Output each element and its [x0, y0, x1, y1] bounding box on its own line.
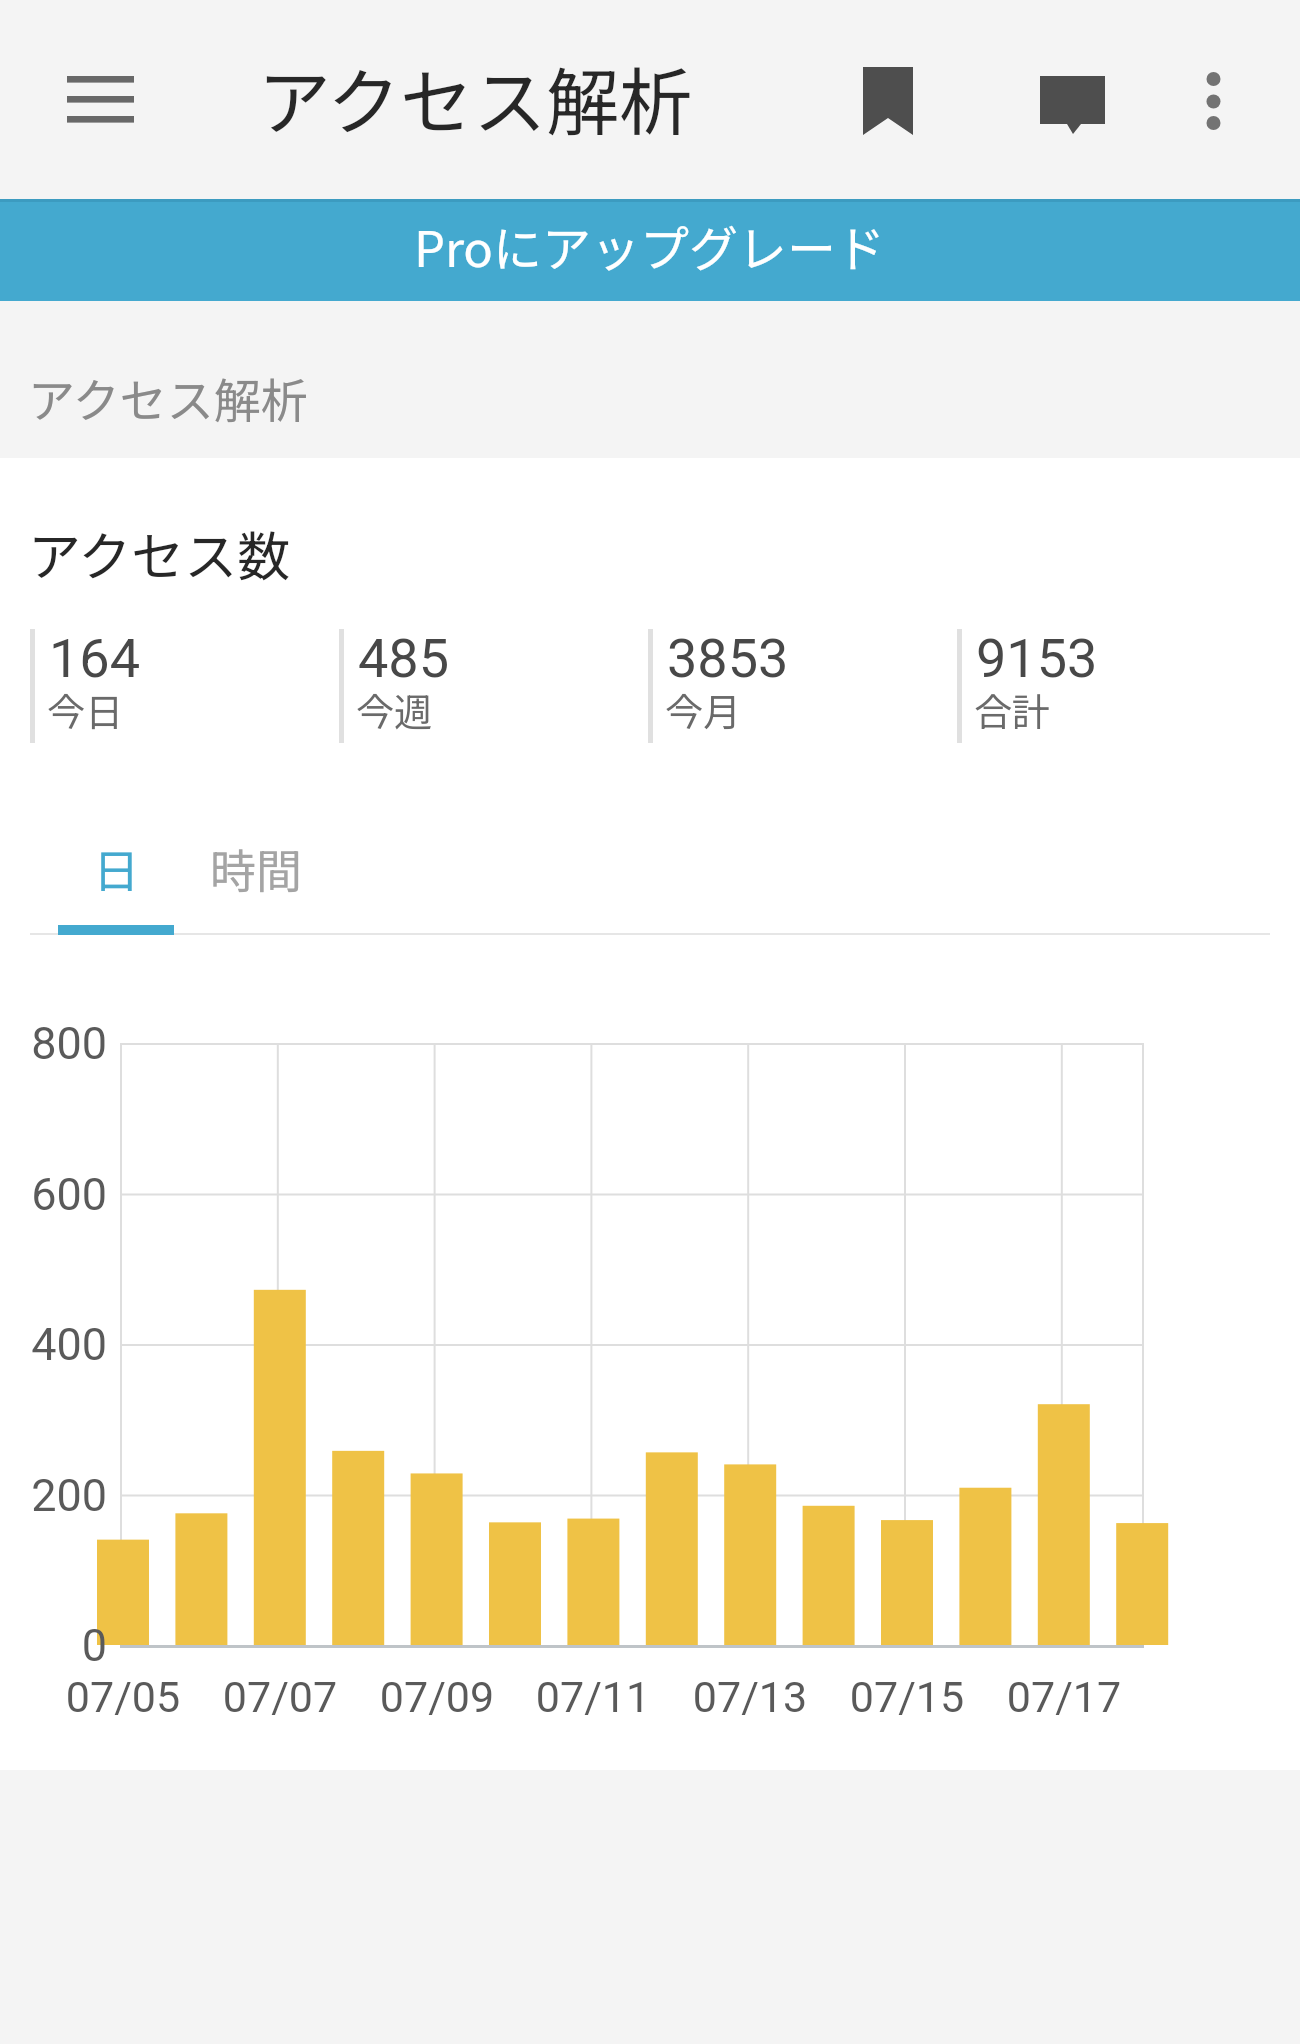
- staticText: 07/17: [974, 1672, 1154, 1722]
- staticText: 0: [3, 1619, 107, 1672]
- staticText: 3853: [667, 627, 789, 690]
- staticText: Proにアップグレード: [414, 210, 886, 281]
- staticText: 合計: [974, 682, 1051, 737]
- staticText: アクセス数: [28, 515, 291, 592]
- staticText: 07/07: [190, 1672, 370, 1722]
- staticText: 時間: [210, 835, 302, 902]
- staticText: 07/05: [33, 1672, 213, 1722]
- button[interactable]: 164: [30, 629, 325, 743]
- button[interactable]: Menu: [39, 51, 135, 147]
- staticText: 200: [3, 1469, 107, 1522]
- staticText: 07/11: [503, 1672, 683, 1722]
- button[interactable]: 時間: [198, 818, 314, 919]
- staticText: 日: [93, 835, 139, 902]
- button[interactable]: 3853: [648, 629, 943, 743]
- staticText: 07/13: [660, 1672, 840, 1722]
- staticText: アクセス解析: [258, 44, 693, 150]
- staticText: 485: [358, 627, 450, 690]
- staticText: 今日: [47, 682, 124, 737]
- staticText: 800: [3, 1017, 107, 1070]
- button[interactable]: Bookmark: [838, 51, 938, 151]
- staticText: 今月: [665, 682, 742, 737]
- staticText: 07/15: [817, 1672, 997, 1722]
- button[interactable]: 485: [339, 629, 634, 743]
- staticText: 今週: [356, 682, 433, 737]
- button[interactable]: More options: [1163, 51, 1263, 151]
- staticText: 164: [49, 627, 141, 690]
- staticText: 9153: [976, 627, 1098, 690]
- staticText: 400: [3, 1318, 107, 1371]
- button[interactable]: 日: [58, 818, 174, 919]
- staticText: 07/09: [347, 1672, 527, 1722]
- button[interactable]: Proにアップグレード: [0, 199, 1300, 301]
- staticText: アクセス解析: [28, 363, 308, 431]
- button[interactable]: 9153: [957, 629, 1252, 743]
- staticText: 600: [3, 1168, 107, 1221]
- button[interactable]: Comments: [1022, 51, 1122, 151]
